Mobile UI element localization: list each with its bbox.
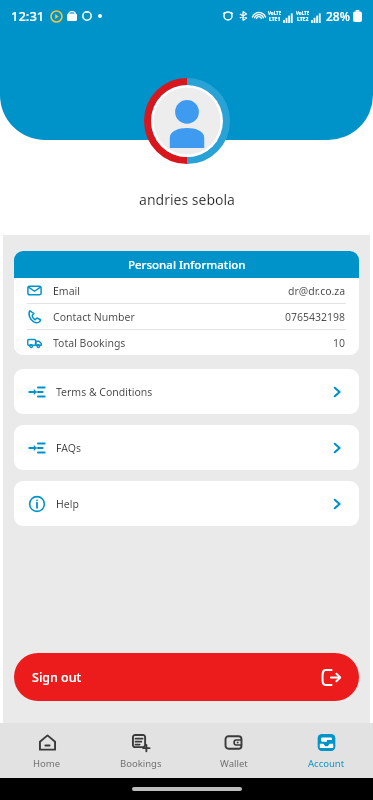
button[interactable]: FAQs	[14, 425, 359, 470]
button[interactable]: Wallet	[187, 727, 280, 775]
staticText: Wallet	[220, 757, 248, 770]
staticText: Home	[33, 757, 61, 770]
staticText: Sign out	[32, 669, 82, 686]
button[interactable]: Account	[280, 727, 373, 775]
staticText: dr@dr.co.za	[288, 284, 346, 298]
staticText: 28%	[326, 8, 350, 24]
staticText: 12:31	[11, 7, 45, 25]
button[interactable]: Email	[14, 278, 359, 303]
button[interactable]: Sign out	[14, 653, 359, 701]
staticText: Personal Information	[128, 257, 246, 273]
staticText: Account	[308, 757, 345, 770]
staticText: Bookings	[120, 757, 162, 770]
button[interactable]: Help	[14, 481, 359, 526]
staticText: Help	[56, 497, 79, 511]
staticText: Terms & Conditions	[56, 385, 153, 399]
staticText: VoLTE	[296, 10, 310, 16]
button[interactable]: Home	[0, 727, 94, 775]
staticText: Email	[53, 284, 80, 298]
staticText: Total Bookings	[53, 336, 126, 350]
button[interactable]: Terms & Conditions	[14, 369, 359, 414]
staticText: 10	[333, 336, 346, 350]
staticText: LTE1	[269, 16, 281, 23]
staticText: FAQs	[56, 441, 81, 455]
staticText: LTE2	[297, 16, 309, 23]
staticText: andries sebola	[139, 190, 235, 209]
button[interactable]: Contact Number	[14, 304, 359, 329]
staticText: Contact Number	[53, 310, 135, 324]
staticText: 0765432198	[285, 310, 346, 324]
staticText: VoLTE	[268, 10, 282, 16]
button[interactable]: Bookings	[94, 727, 187, 775]
button[interactable]: Total Bookings	[14, 330, 359, 355]
